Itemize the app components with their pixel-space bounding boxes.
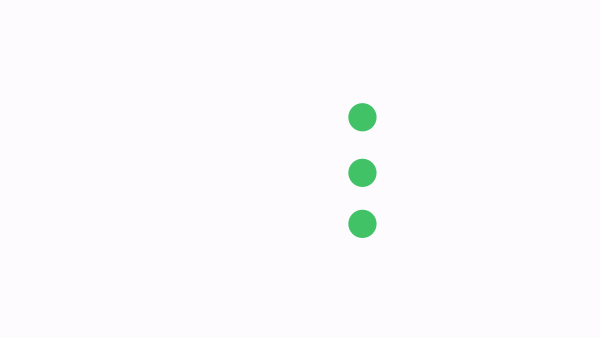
button[interactable]: More options [348,103,377,238]
